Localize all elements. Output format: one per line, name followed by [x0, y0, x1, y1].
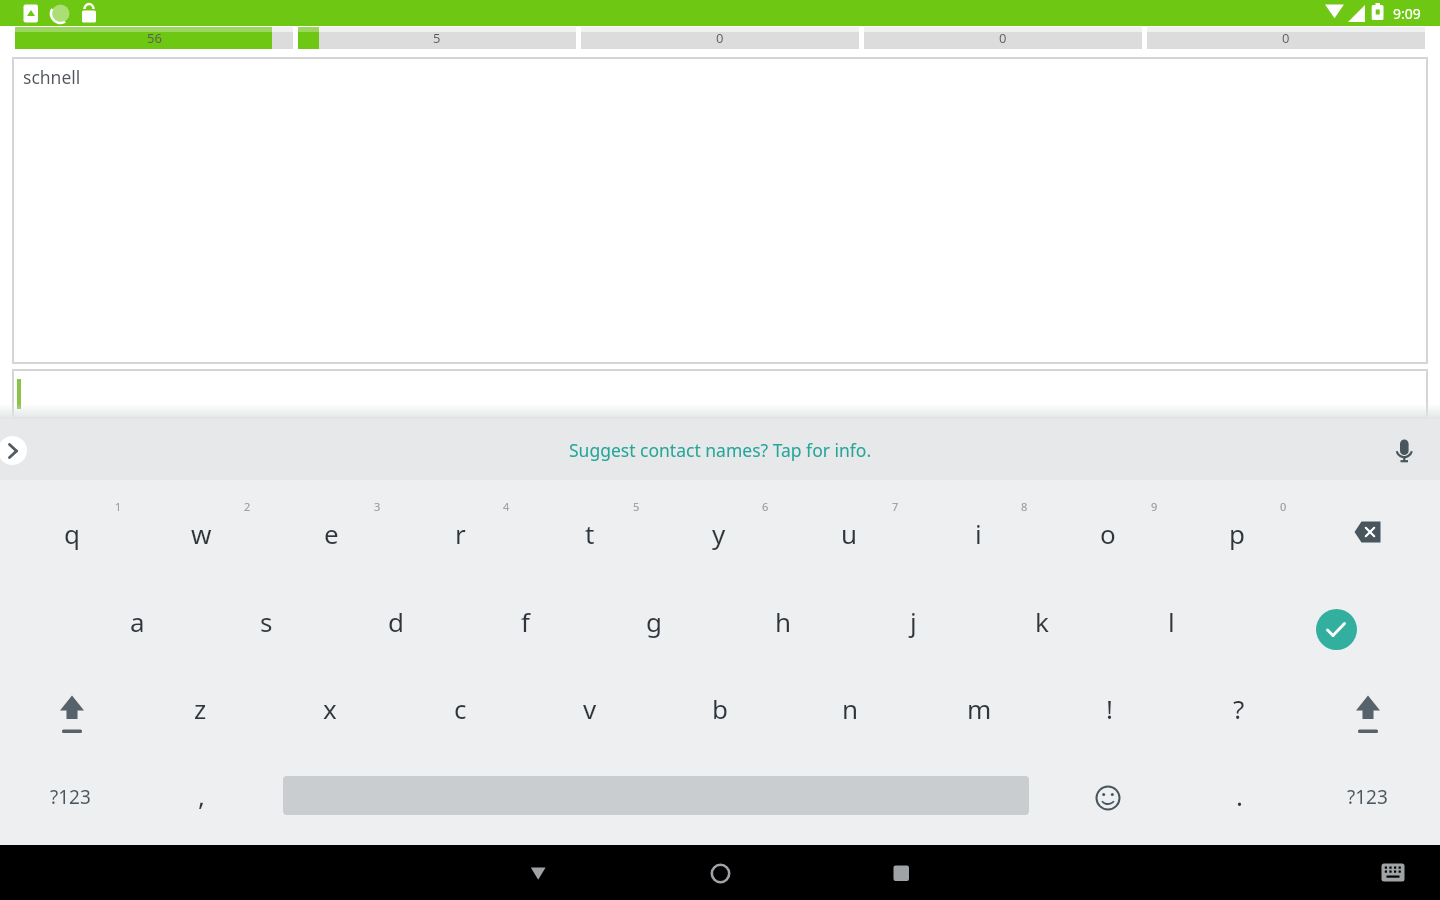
button[interactable]: h: [720, 578, 846, 664]
button[interactable]: [9, 665, 135, 751]
staticText: Suggest contact names? Tap for info.: [569, 438, 872, 462]
button[interactable]: [1305, 665, 1431, 751]
button[interactable]: p: [1174, 490, 1300, 576]
staticText: 0: [999, 29, 1007, 47]
staticText: 2: [244, 499, 251, 514]
staticText: d: [388, 604, 404, 639]
button[interactable]: q: [9, 490, 135, 576]
staticText: 5: [633, 499, 640, 514]
button[interactable]: ?: [1176, 665, 1302, 751]
button[interactable]: .: [1176, 752, 1302, 838]
staticText: e: [324, 516, 339, 551]
staticText: h: [775, 604, 792, 639]
button[interactable]: [0, 425, 39, 475]
staticText: 6: [762, 499, 769, 514]
button[interactable]: [1358, 846, 1428, 900]
staticText: 1: [115, 499, 122, 514]
staticText: 9:09: [1393, 4, 1421, 23]
button[interactable]: c: [397, 665, 523, 751]
staticText: q: [64, 516, 80, 551]
staticText: 9: [1151, 499, 1158, 514]
button[interactable]: [503, 846, 573, 900]
button[interactable]: ?123: [1304, 754, 1430, 840]
button[interactable]: [866, 846, 936, 900]
button[interactable]: ?123: [7, 754, 133, 840]
staticText: z: [194, 691, 207, 726]
button[interactable]: f: [462, 578, 588, 664]
button[interactable]: [685, 846, 755, 900]
button[interactable]: ,: [138, 752, 264, 838]
staticText: j: [910, 604, 917, 639]
button[interactable]: m: [916, 665, 1042, 751]
staticText: 56: [147, 29, 162, 47]
button[interactable]: [1379, 425, 1429, 475]
staticText: v: [583, 691, 597, 726]
staticText: 0: [716, 29, 724, 47]
button[interactable]: a: [74, 578, 200, 664]
button[interactable]: r: [397, 490, 523, 576]
button[interactable]: x: [267, 665, 393, 751]
staticText: i: [975, 516, 982, 551]
staticText: c: [454, 691, 467, 726]
staticText: r: [455, 516, 466, 551]
button[interactable]: u: [786, 490, 912, 576]
button[interactable]: l: [1108, 578, 1234, 664]
staticText: 8: [1021, 499, 1028, 514]
staticText: y: [712, 516, 726, 551]
staticText: k: [1035, 604, 1049, 639]
button[interactable]: j: [850, 578, 976, 664]
staticText: x: [323, 691, 337, 726]
staticText: 3: [374, 499, 381, 514]
staticText: 5: [433, 29, 441, 47]
staticText: u: [841, 516, 858, 551]
staticText: .: [1236, 778, 1243, 813]
staticText: ?: [1233, 691, 1245, 726]
button[interactable]: k: [979, 578, 1105, 664]
button[interactable]: [12, 369, 1428, 419]
staticText: w: [191, 516, 212, 551]
staticText: ?123: [1347, 784, 1388, 810]
button[interactable]: s: [203, 578, 329, 664]
staticText: m: [967, 691, 992, 726]
button[interactable]: i: [915, 490, 1041, 576]
button[interactable]: b: [657, 665, 783, 751]
button[interactable]: Suggest contact names? Tap for info.: [0, 419, 1440, 480]
staticText: 7: [892, 499, 899, 514]
button[interactable]: y: [656, 490, 782, 576]
staticText: g: [646, 604, 662, 639]
button[interactable]: z: [137, 665, 263, 751]
staticText: schnell: [23, 65, 81, 89]
staticText: f: [521, 604, 530, 639]
staticText: ,: [198, 778, 205, 813]
button[interactable]: v: [527, 665, 653, 751]
button[interactable]: w: [138, 490, 264, 576]
staticText: n: [842, 691, 859, 726]
button[interactable]: n: [787, 665, 913, 751]
staticText: ?123: [50, 784, 91, 810]
button[interactable]: [1045, 754, 1171, 840]
staticText: t: [585, 516, 595, 551]
button[interactable]: o: [1045, 490, 1171, 576]
staticText: !: [1106, 691, 1113, 726]
staticText: 0: [1280, 499, 1287, 514]
button[interactable]: [1306, 490, 1432, 576]
staticText: o: [1100, 516, 1116, 551]
staticText: l: [1168, 604, 1175, 639]
staticText: 0: [1282, 29, 1290, 47]
staticText: s: [260, 604, 273, 639]
button[interactable]: [1316, 609, 1357, 650]
staticText: 4: [503, 499, 510, 514]
button[interactable]: t: [527, 490, 653, 576]
button[interactable]: g: [591, 578, 717, 664]
button[interactable]: !: [1046, 665, 1172, 751]
staticText: b: [712, 691, 728, 726]
button[interactable]: e: [268, 490, 394, 576]
button[interactable]: d: [333, 578, 459, 664]
staticText: p: [1229, 516, 1245, 551]
staticText: a: [130, 604, 145, 639]
